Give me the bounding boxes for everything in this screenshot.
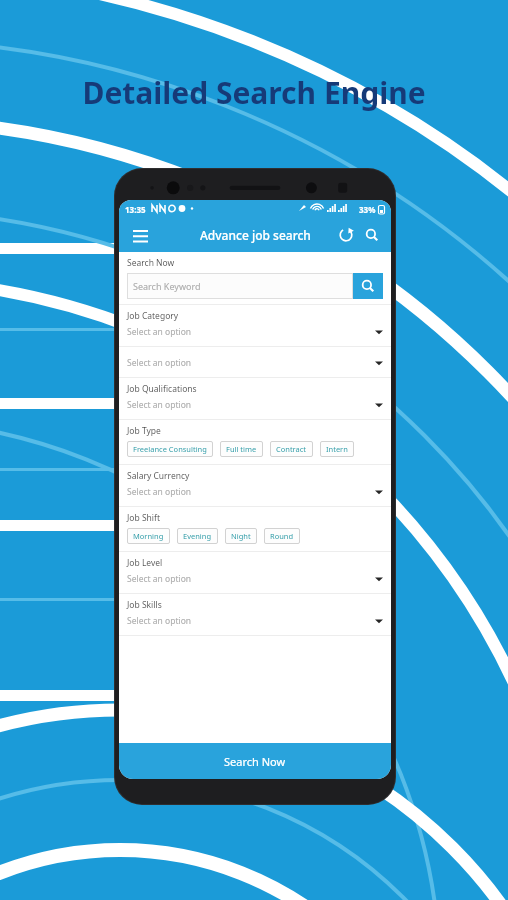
button[interactable]: Refresh xyxy=(333,222,359,248)
staticText: 33% xyxy=(359,204,376,215)
button[interactable]: Salary Currency xyxy=(119,465,391,506)
button[interactable]: Search xyxy=(353,273,383,299)
button[interactable]: Contract xyxy=(270,441,313,457)
button[interactable]: Full time xyxy=(220,441,263,457)
button[interactable]: Night xyxy=(225,528,257,544)
staticText: Job Shift xyxy=(127,512,161,524)
staticText: Round xyxy=(270,531,294,541)
staticText: Job Level xyxy=(127,557,163,569)
button[interactable]: Round xyxy=(264,528,300,544)
staticText: Select an option xyxy=(127,326,192,338)
button[interactable]: Job Level xyxy=(119,552,391,593)
button[interactable]: Freelance Consulting xyxy=(127,441,213,457)
staticText: Advance job search xyxy=(200,227,311,243)
staticText: Select an option xyxy=(127,399,192,411)
staticText: Job Type xyxy=(127,425,161,437)
staticText: Search Now xyxy=(224,754,286,769)
staticText: Job Skills xyxy=(127,599,162,611)
button[interactable]: Search Keyword xyxy=(127,273,353,299)
button[interactable]: Job Skills xyxy=(119,594,391,635)
staticText: Contract xyxy=(276,444,307,454)
button[interactable]: Intern xyxy=(320,441,354,457)
staticText: Search Now xyxy=(127,257,175,269)
button[interactable]: Search Now xyxy=(119,743,391,779)
staticText: Search Keyword xyxy=(133,280,201,292)
staticText: Job Qualifications xyxy=(127,383,197,395)
staticText: Freelance Consulting xyxy=(133,444,207,454)
button[interactable]: Evening xyxy=(177,528,218,544)
staticText: Salary Currency xyxy=(127,470,190,482)
button[interactable]: Job Qualifications xyxy=(119,378,391,419)
staticText: Morning xyxy=(133,531,164,541)
staticText: Full time xyxy=(226,444,257,454)
staticText: Intern xyxy=(326,444,348,454)
button[interactable]: Menu xyxy=(127,222,153,248)
staticText: Detailed Search Engine xyxy=(82,72,426,113)
staticText: Select an option xyxy=(127,486,192,498)
staticText: Night xyxy=(231,531,251,541)
staticText: 13:35 xyxy=(125,204,146,215)
button[interactable]: Morning xyxy=(127,528,170,544)
staticText: Job Category xyxy=(127,310,179,322)
button[interactable]: Search xyxy=(359,222,385,248)
staticText: Select an option xyxy=(127,357,192,369)
staticText: Select an option xyxy=(127,615,192,627)
button[interactable]: Select an option xyxy=(119,347,391,377)
staticText: Select an option xyxy=(127,573,192,585)
button[interactable]: Job Category xyxy=(119,305,391,346)
staticText: Evening xyxy=(183,531,212,541)
